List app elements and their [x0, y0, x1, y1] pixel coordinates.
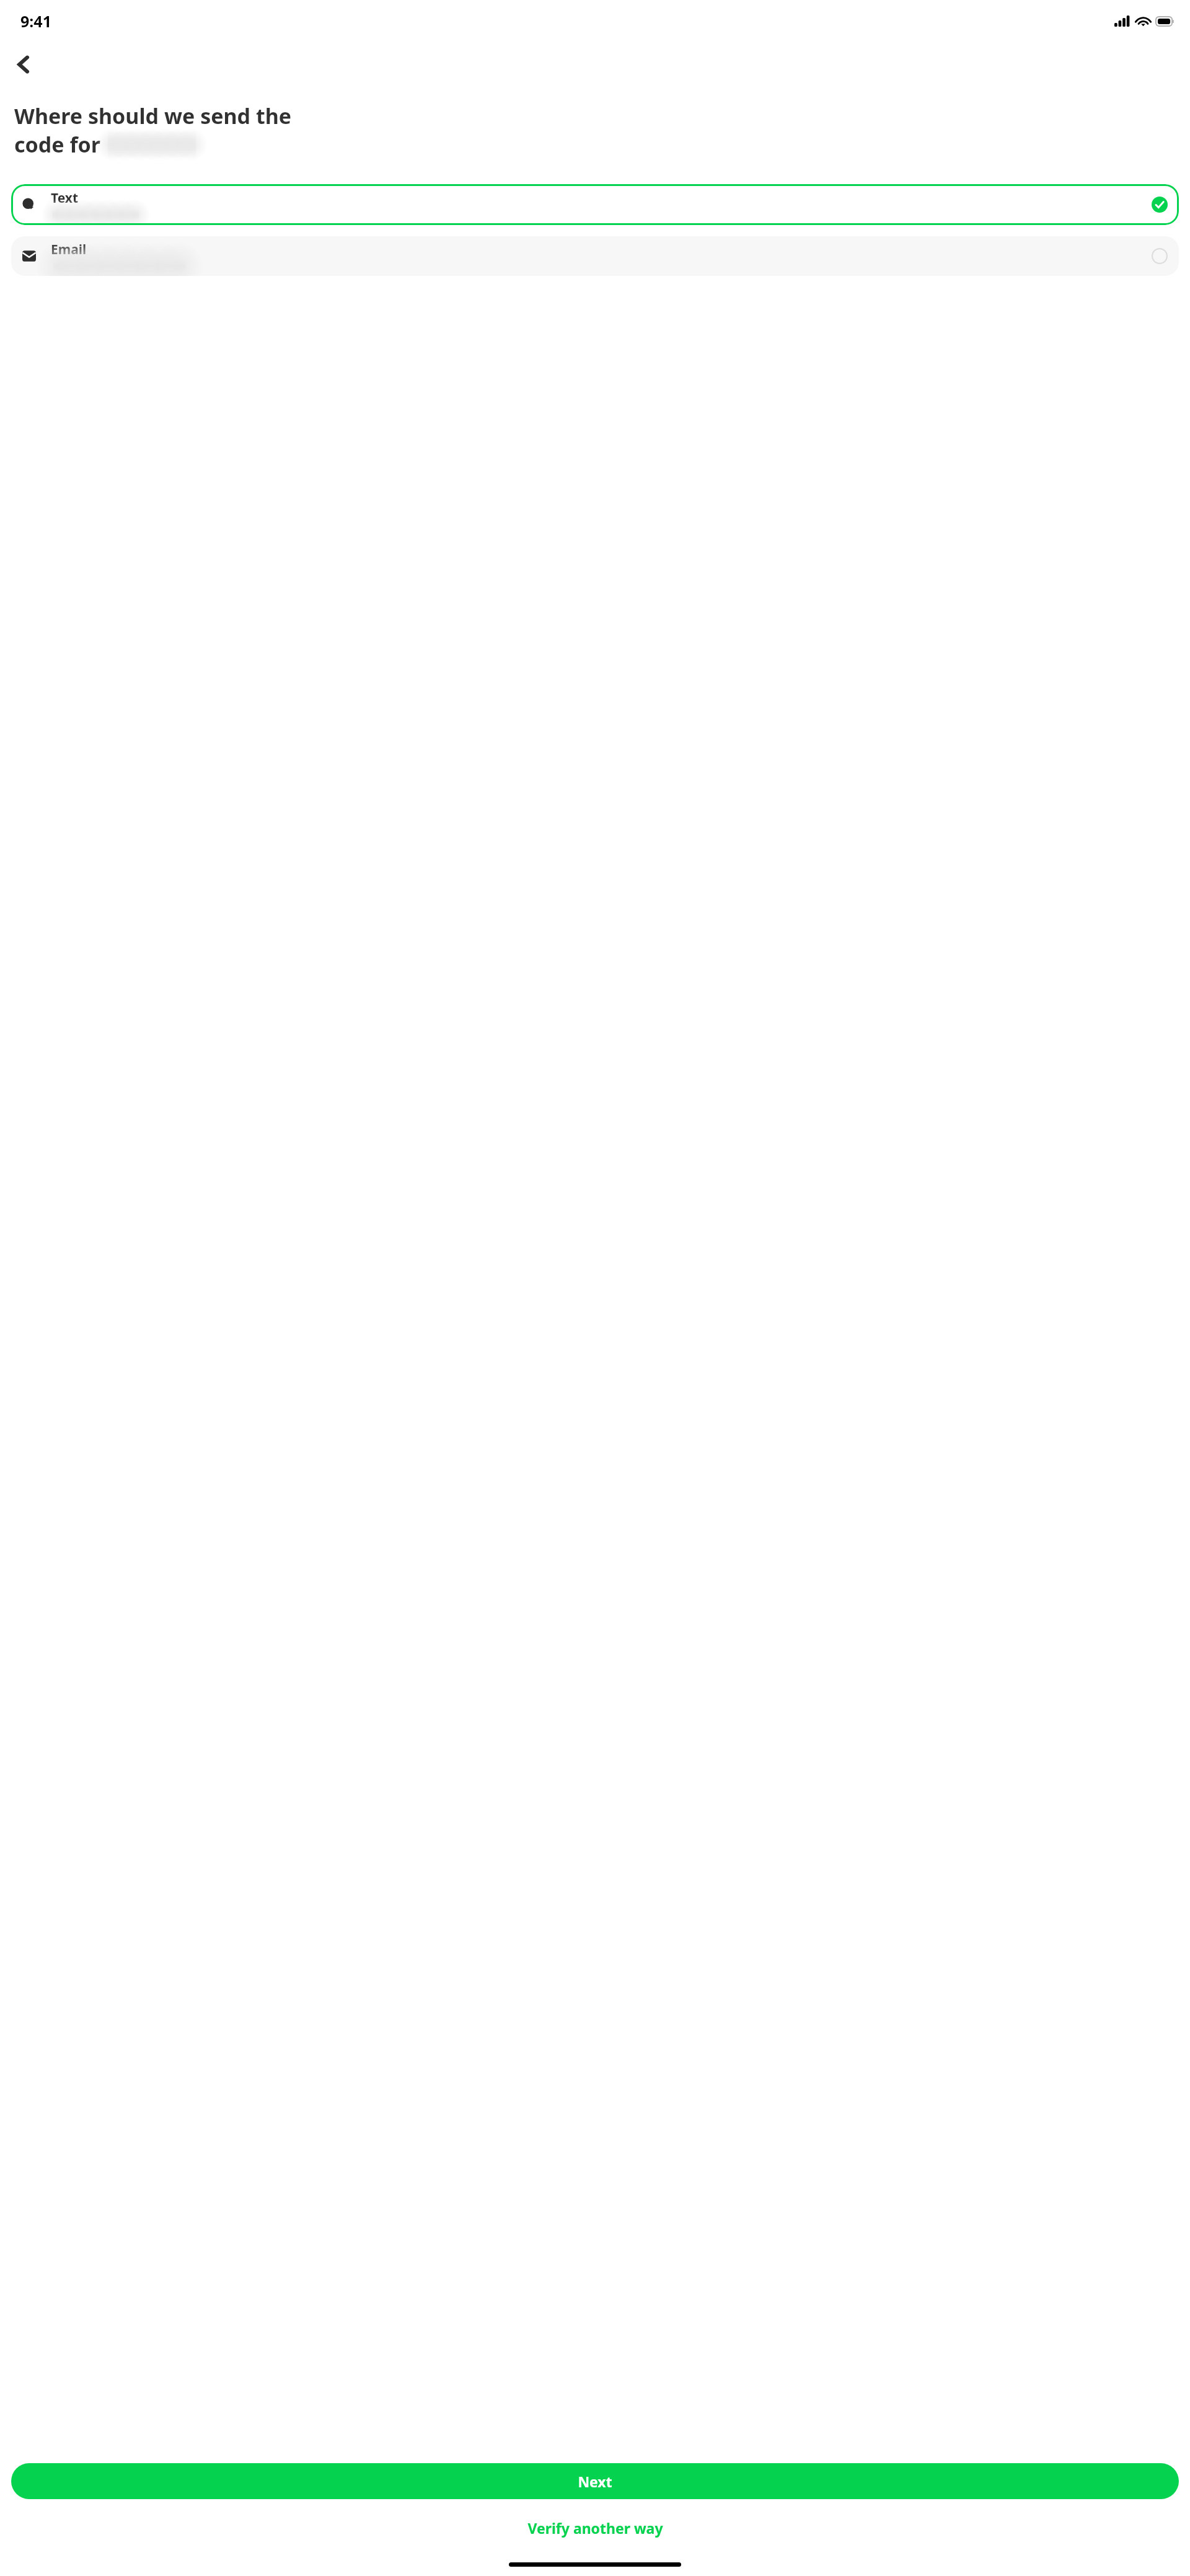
button[interactable]: Next: [11, 2463, 1179, 2499]
button[interactable]: Email: [11, 236, 1179, 276]
button[interactable]: Text: [11, 184, 1179, 225]
button[interactable]: Back: [6, 47, 41, 82]
staticText: Verify another way: [527, 2518, 663, 2538]
staticText: code for: [14, 130, 101, 159]
staticText: Email: [51, 241, 87, 259]
button[interactable]: Verify another way: [0, 2512, 1190, 2544]
staticText: Next: [578, 2472, 612, 2491]
staticText: Where should we send the: [14, 102, 292, 130]
staticText: Text: [51, 189, 79, 207]
staticText: 9:41: [20, 11, 51, 32]
